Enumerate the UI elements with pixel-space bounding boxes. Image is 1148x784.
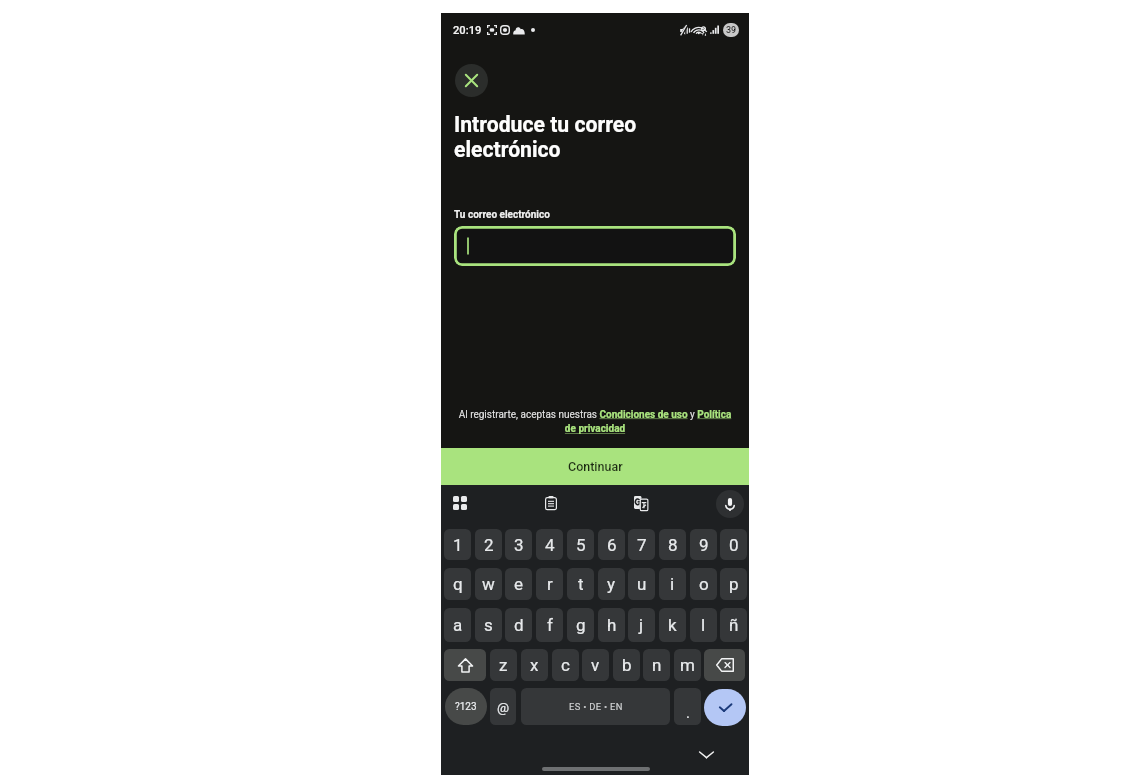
button[interactable]: 9 [690,529,717,560]
button[interactable]: Ocultar teclado [696,746,716,762]
button[interactable]: @ [490,688,516,725]
button[interactable]: k [659,608,686,642]
staticText: Tu correo electrónico [454,209,550,221]
staticText: h [607,615,617,635]
button[interactable]: 3 [505,529,532,560]
button[interactable]: Más opciones [453,496,467,510]
staticText: a [453,615,463,635]
staticText: w [482,574,495,594]
button[interactable]: 2 [475,529,502,560]
staticText: 6 [607,535,617,555]
staticText: Continuar [568,459,623,474]
staticText: l [701,615,706,635]
button[interactable]: n [643,649,670,681]
staticText: i [670,574,675,594]
button[interactable]: o [690,568,717,600]
button[interactable]: 6 [598,529,625,560]
staticText: t [578,574,584,594]
staticText: y [607,574,616,594]
staticText: 2 [484,535,494,555]
button[interactable]: e [505,568,532,600]
staticText: r [547,574,553,594]
staticText: 39 [726,25,737,36]
staticText: x [530,655,539,675]
staticText: o [699,574,709,594]
button[interactable]: ES • DE • EN [521,688,670,725]
staticText: 7 [637,535,647,555]
staticText: n [652,655,662,675]
staticText: . [686,704,690,722]
staticText: 20:19 [453,24,482,37]
staticText: g [576,615,586,635]
staticText: 4 [545,535,555,555]
staticText: p [729,574,739,594]
staticText: Introduce tu correo electrónico [454,112,637,162]
button[interactable]: 0 [720,529,747,560]
button[interactable]: i [659,568,686,600]
button[interactable]: f [536,608,563,642]
staticText: ?123 [455,701,477,713]
staticText: v [591,655,600,675]
button[interactable]: 8 [659,529,686,560]
staticText: s [484,615,493,635]
staticText: 0 [729,535,739,555]
staticText: b [622,655,632,675]
staticText: q [453,574,463,594]
staticText: e [514,574,524,594]
button[interactable]: Mayúsculas [444,649,486,681]
button[interactable]: v [582,649,609,681]
staticText: j [639,615,644,635]
button[interactable]: l [690,608,717,642]
button[interactable]: z [490,649,517,681]
staticText: c [561,655,570,675]
button[interactable]: s [475,608,502,642]
staticText: 9 [699,535,709,555]
button[interactable]: 4 [536,529,563,560]
button[interactable]: b [613,649,640,681]
button[interactable]: x [521,649,548,681]
staticText: 8 [668,535,678,555]
button[interactable]: t [567,568,594,600]
button[interactable]: Borrar [704,649,745,681]
staticText: d [514,615,524,635]
button[interactable]: 1 [444,529,471,560]
staticText: @ [497,699,510,715]
button[interactable]: Continuar [441,448,749,485]
staticText: f [547,615,553,635]
staticText: k [668,615,677,635]
button[interactable]: y [598,568,625,600]
button[interactable]: 7 [628,529,655,560]
button[interactable]: Portapapeles [542,494,560,512]
button[interactable]: p [720,568,747,600]
button[interactable]: u [628,568,655,600]
staticText: 1 [453,535,463,555]
button[interactable]: 5 [567,529,594,560]
button[interactable]: Aceptar [704,689,746,726]
button[interactable]: c [552,649,579,681]
staticText: ñ [729,615,739,635]
staticText: m [680,655,695,675]
button[interactable]: ñ [720,608,747,642]
button[interactable]: g [567,608,594,642]
button[interactable]: . [674,688,701,725]
button[interactable]: ?123 [445,688,487,725]
staticText: Al registrarte, aceptas nuestras Condici… [455,409,735,435]
staticText: 3 [514,535,524,555]
button[interactable]: a [444,608,471,642]
button[interactable]: Campo de correo electrónico [454,226,736,266]
button[interactable]: q [444,568,471,600]
button[interactable]: Cerrar [455,64,488,97]
staticText: 5 [576,535,586,555]
staticText: ES • DE • EN [569,701,623,712]
button[interactable]: h [598,608,625,642]
staticText: z [499,655,508,675]
button[interactable]: Búsqueda por voz [716,490,744,518]
button[interactable]: r [536,568,563,600]
button[interactable]: m [674,649,701,681]
button[interactable]: j [628,608,655,642]
staticText: u [637,574,647,594]
button[interactable]: d [505,608,532,642]
button[interactable]: w [475,568,502,600]
button[interactable]: Traducir [634,496,648,511]
